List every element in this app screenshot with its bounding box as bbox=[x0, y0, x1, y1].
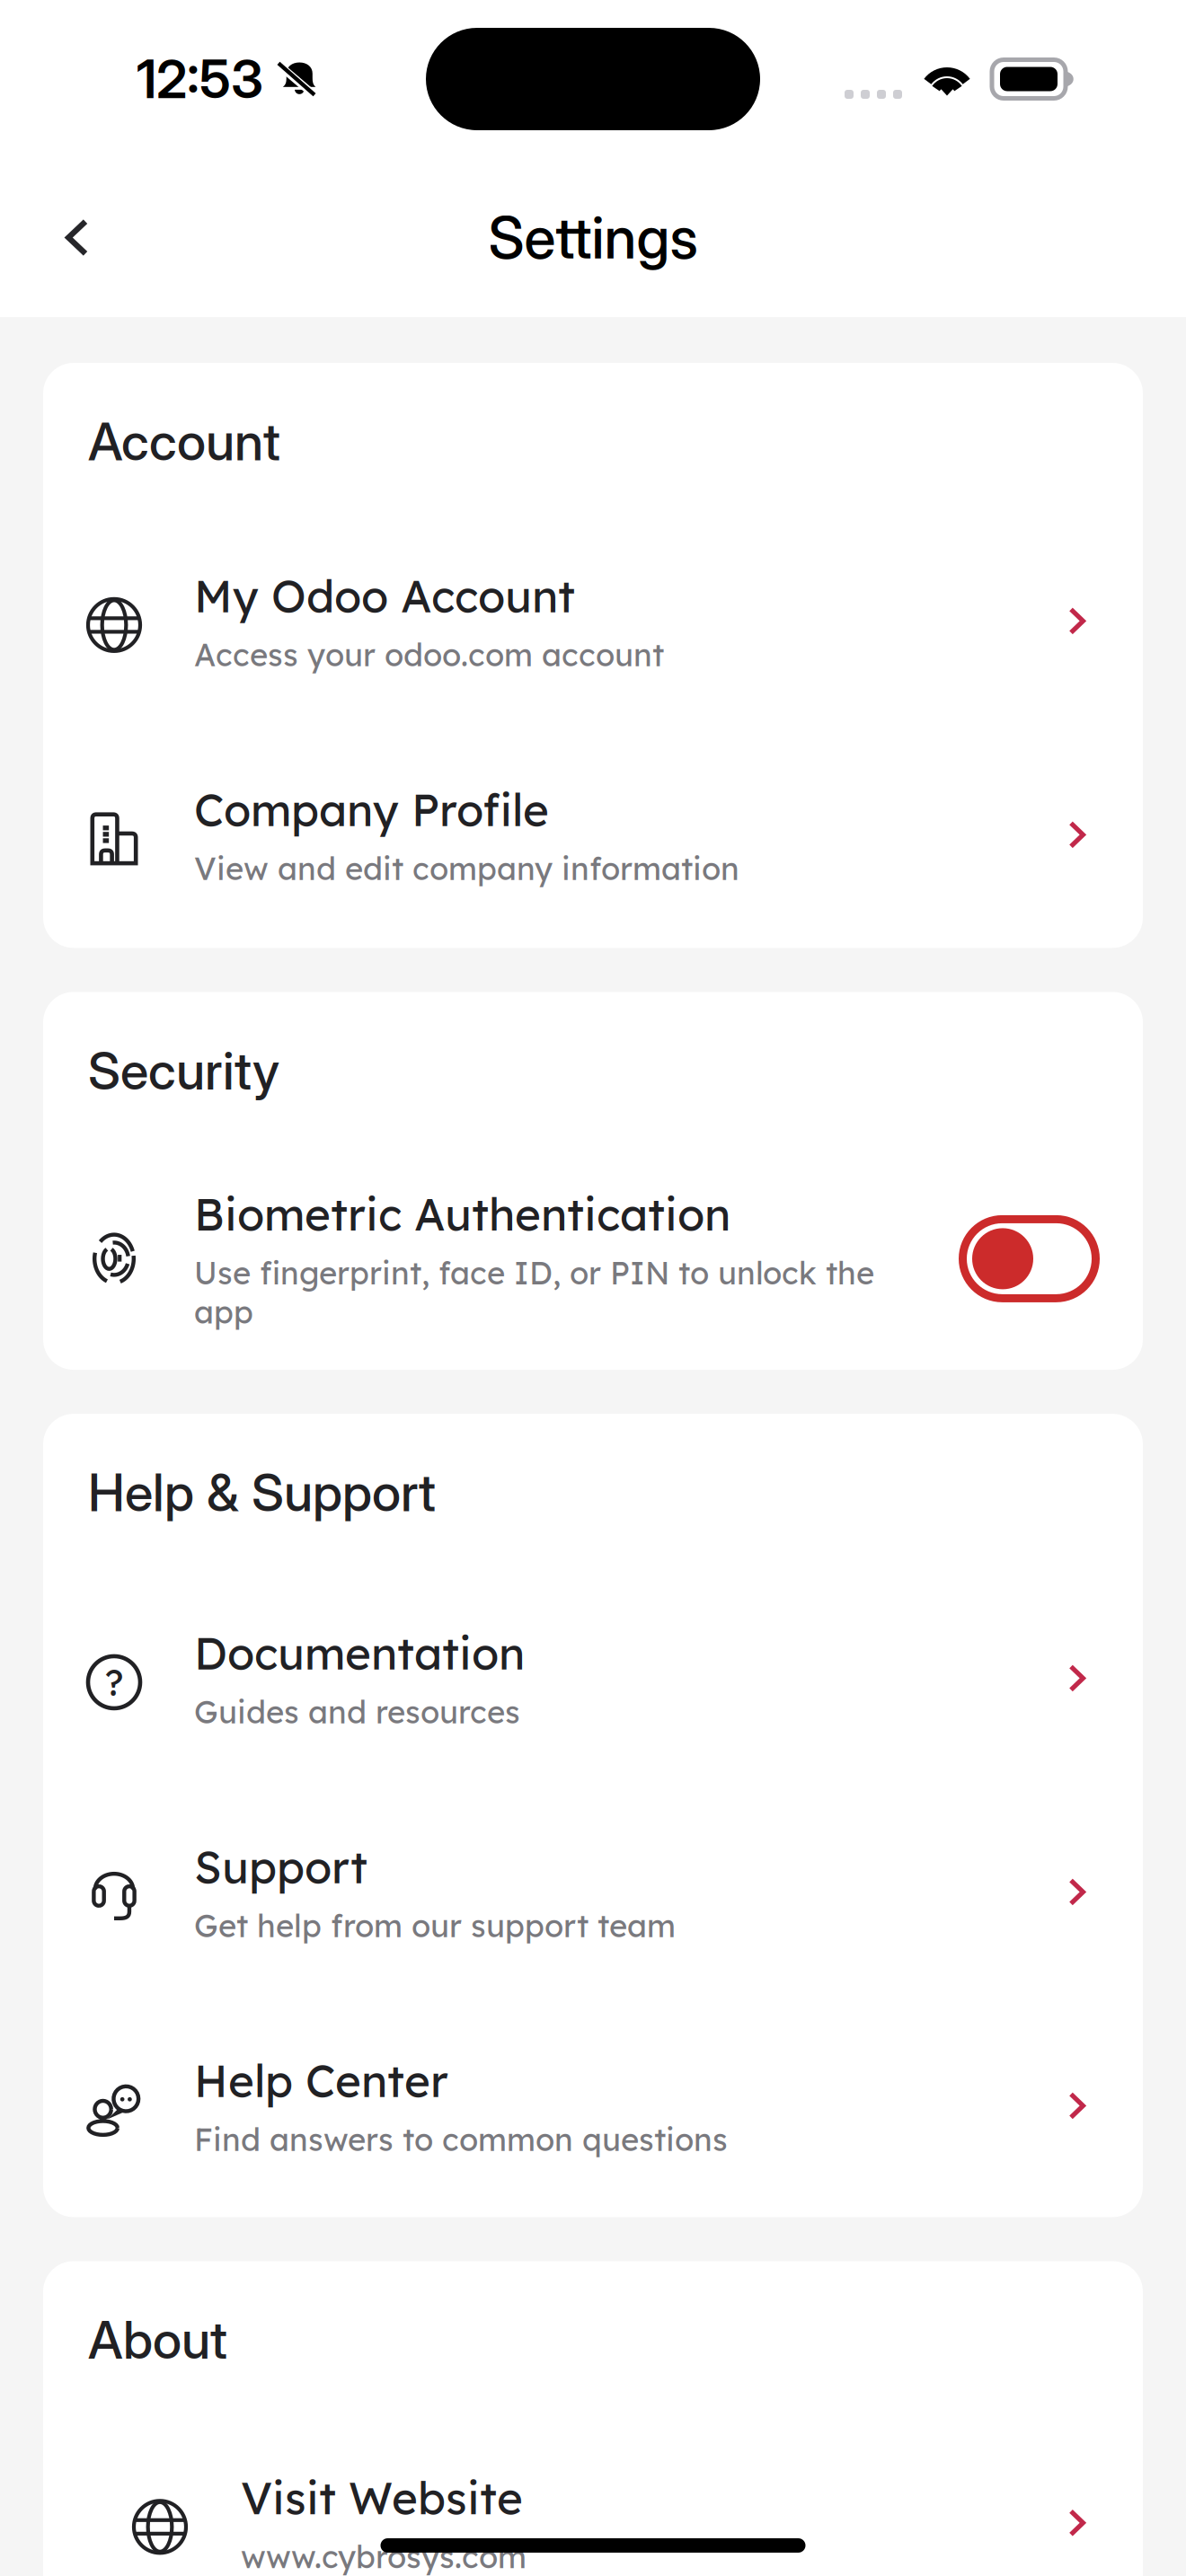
staticText: Guides and resources bbox=[194, 1692, 520, 1731]
staticText: ? bbox=[105, 1660, 123, 1705]
staticText: Company Profile bbox=[194, 782, 549, 837]
button[interactable]: Help Center bbox=[43, 2053, 1143, 2159]
button[interactable]: Company Profile bbox=[43, 782, 1143, 888]
staticText: 12:53 bbox=[137, 47, 263, 111]
button[interactable]: Visit Website bbox=[43, 2470, 1143, 2576]
staticText: About bbox=[88, 2309, 227, 2371]
staticText: Help Center bbox=[194, 2053, 448, 2108]
staticText: Documentation bbox=[194, 1625, 525, 1681]
staticText: View and edit company information bbox=[194, 849, 739, 888]
staticText: Help & Support bbox=[88, 1461, 436, 1524]
button[interactable]: Support bbox=[43, 1839, 1143, 1945]
staticText: Visit Website bbox=[241, 2470, 523, 2525]
staticText: Account bbox=[88, 410, 280, 473]
staticText: www.cybrosys.com bbox=[241, 2537, 527, 2576]
staticText: Support bbox=[194, 1839, 367, 1894]
staticText: My Odoo Account bbox=[194, 568, 575, 623]
staticText: Access your odoo.com account bbox=[194, 635, 664, 674]
button[interactable]: Back bbox=[0, 192, 124, 283]
button[interactable]: ? bbox=[43, 1625, 1143, 1731]
staticText: Security bbox=[88, 1040, 279, 1102]
staticText: Get help from our support team bbox=[194, 1906, 676, 1945]
button[interactable]: My Odoo Account bbox=[43, 568, 1143, 674]
staticText: Use fingerprint, face ID, or PIN to unlo… bbox=[194, 1253, 874, 1331]
staticText: Find answers to common questions bbox=[194, 2120, 728, 2159]
button[interactable]: Biometric Authentication bbox=[959, 1215, 1100, 1302]
staticText: Biometric Authentication bbox=[194, 1186, 730, 1242]
staticText: Settings bbox=[488, 203, 698, 272]
